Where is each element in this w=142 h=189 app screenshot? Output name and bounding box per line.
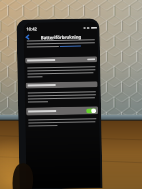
button[interactable]: Toggle optimised charging [26, 106, 98, 116]
button[interactable]: Back [24, 33, 31, 41]
button[interactable] [26, 81, 98, 89]
button[interactable] [25, 56, 97, 64]
button[interactable]: Toggle optimised charging [86, 108, 96, 113]
staticText: Batteriförbrukning [41, 34, 82, 40]
staticText: 10:42 [26, 26, 38, 32]
